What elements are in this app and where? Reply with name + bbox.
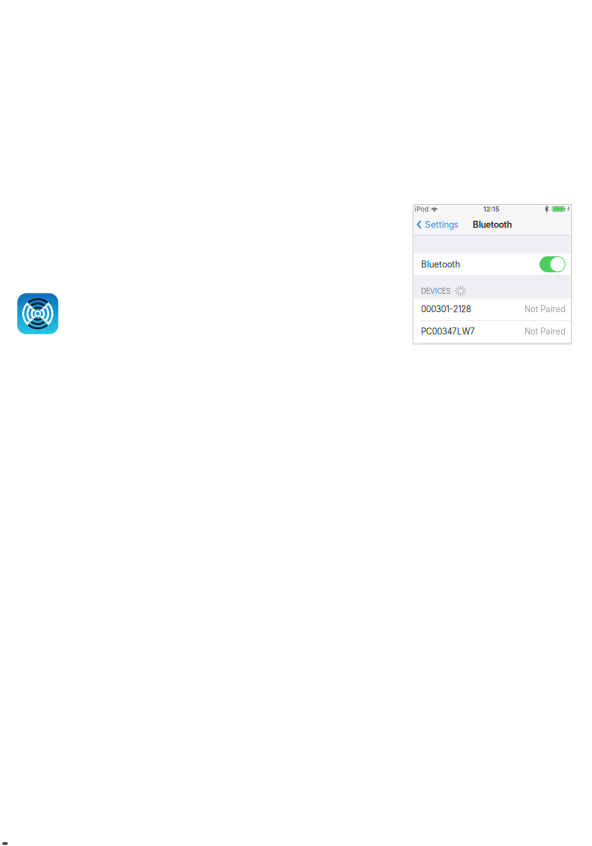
staticText: Bluetooth (421, 259, 460, 269)
button[interactable]: Bluetooth (413, 253, 571, 275)
button[interactable]: 000301-2128 (413, 298, 571, 320)
button[interactable]: Settings (413, 216, 462, 233)
staticText: Settings (425, 219, 459, 230)
staticText: Not Paired (524, 326, 565, 336)
staticText: iPod (415, 205, 429, 213)
staticText: 12:15 (483, 205, 499, 213)
staticText: Bluetooth (473, 219, 512, 230)
staticText: Not Paired (524, 304, 565, 314)
staticText: PC00347LW7 (421, 326, 475, 336)
button[interactable]: PC00347LW7 (413, 321, 571, 342)
staticText: DEVICES (421, 287, 451, 295)
staticText: 000301-2128 (421, 304, 471, 314)
